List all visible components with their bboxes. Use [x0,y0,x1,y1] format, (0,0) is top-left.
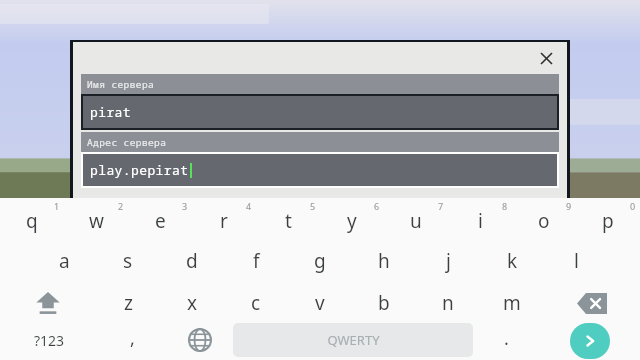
button[interactable]: e [128,198,192,240]
staticText: n [442,290,454,316]
staticText: e [155,208,166,234]
button[interactable]: i [448,198,512,240]
staticText: h [378,248,390,274]
staticText: 8 [502,200,508,212]
staticText: w [89,208,104,234]
button[interactable]: h [352,240,416,282]
button[interactable]: QWERTY [233,323,473,357]
button[interactable]: b [352,282,416,324]
staticText: ?123 [34,331,65,350]
button[interactable]: play.pepirat [83,154,557,186]
staticText: . [504,326,509,351]
staticText: 5 [310,200,316,212]
button[interactable]: , [99,324,166,360]
staticText: QWERTY [327,331,380,349]
button[interactable]: z [96,282,160,324]
button[interactable]: m [480,282,544,324]
button[interactable]: ?123 [0,324,99,360]
staticText: f [253,248,260,274]
staticText: d [186,248,198,274]
staticText: j [446,248,451,274]
staticText: m [503,290,521,316]
button[interactable]: a [32,240,96,282]
button[interactable]: w [64,198,128,240]
button[interactable]: j [416,240,480,282]
staticText: q [26,208,38,234]
staticText: 0 [630,200,636,212]
staticText: o [538,208,550,234]
staticText: , [130,326,135,351]
button[interactable]: Change language [166,324,233,360]
button[interactable]: v [288,282,352,324]
button[interactable]: c [224,282,288,324]
button[interactable]: . [473,324,540,360]
staticText: 6 [374,200,380,212]
staticText: 7 [438,200,444,212]
button[interactable]: u [384,198,448,240]
staticText: z [124,290,133,316]
staticText: 1 [54,200,60,212]
staticText: i [478,208,483,234]
button[interactable]: s [96,240,160,282]
button[interactable]: l [544,240,608,282]
button[interactable]: o [512,198,576,240]
staticText: k [507,248,518,274]
button[interactable]: Backspace [544,282,640,324]
staticText: pirat [90,103,132,121]
staticText: x [187,290,198,316]
staticText: l [574,248,579,274]
button[interactable]: pirat [83,96,557,128]
button[interactable]: d [160,240,224,282]
staticText: y [347,208,357,234]
staticText: 9 [566,200,572,212]
staticText: 4 [246,200,252,212]
staticText: u [410,208,422,234]
button[interactable]: g [288,240,352,282]
staticText: play.pepirat [90,161,189,179]
button[interactable]: k [480,240,544,282]
staticText: Имя сервера [87,78,155,91]
staticText: v [315,290,325,316]
staticText: g [314,248,326,274]
button[interactable]: n [416,282,480,324]
button[interactable]: y [320,198,384,240]
button[interactable]: p [576,198,640,240]
button[interactable]: Close [533,45,559,71]
staticText: t [285,208,292,234]
button[interactable]: Enter [570,323,610,359]
staticText: a [59,248,70,274]
staticText: 2 [118,200,124,212]
button[interactable]: x [160,282,224,324]
button[interactable]: f [224,240,288,282]
staticText: r [220,208,228,234]
button[interactable]: r [192,198,256,240]
staticText: 3 [182,200,188,212]
button[interactable]: q [0,198,64,240]
staticText: Адрес сервера [87,136,167,149]
staticText: c [251,290,261,316]
button[interactable]: Shift [0,282,96,324]
staticText: s [123,248,133,274]
button[interactable]: t [256,198,320,240]
staticText: p [602,208,614,234]
staticText: b [378,290,390,316]
